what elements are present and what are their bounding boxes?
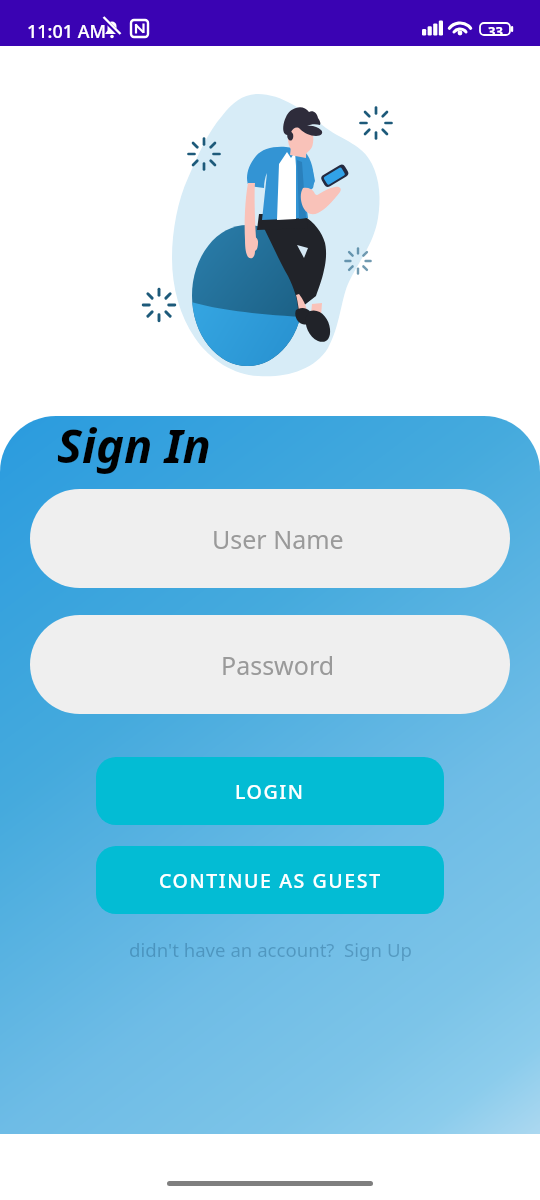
button[interactable]: User Name	[30, 489, 510, 588]
staticText: 33	[488, 22, 503, 40]
staticText: Sign In	[57, 416, 211, 477]
staticText: User Name	[212, 522, 344, 556]
button[interactable]: didn't have an account? Sign Up	[129, 937, 412, 962]
staticText: 11:01 AM	[27, 19, 107, 44]
staticText: CONTINUE AS GUEST	[159, 867, 382, 894]
button[interactable]: LOGIN	[96, 757, 444, 825]
button[interactable]: Password	[30, 615, 510, 714]
staticText: Password	[221, 648, 335, 682]
staticText: LOGIN	[235, 778, 305, 805]
button[interactable]: CONTINUE AS GUEST	[96, 846, 444, 914]
staticText: didn't have an account? Sign Up	[129, 937, 412, 962]
